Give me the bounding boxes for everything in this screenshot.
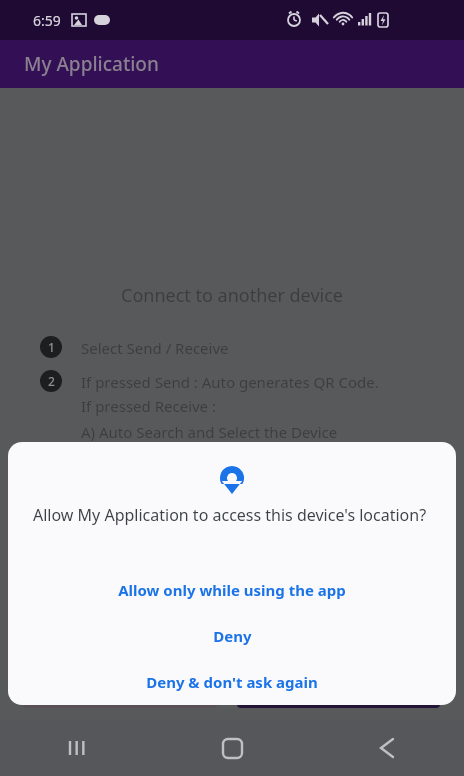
button[interactable]: Home	[155, 720, 309, 776]
staticText: Deny	[213, 626, 252, 646]
button[interactable]	[20, 662, 220, 708]
staticText: My Application	[24, 51, 159, 77]
button[interactable]: Recent apps	[0, 720, 155, 776]
button[interactable]: Deny	[8, 619, 456, 653]
staticText: Allow only while using the app	[118, 580, 346, 600]
button[interactable]	[237, 662, 440, 708]
staticText: Select Send / Receive	[81, 338, 229, 358]
staticText: Allow My Application to access this devi…	[33, 504, 433, 526]
button[interactable]: Deny & don't ask again	[8, 665, 456, 699]
staticText: 1	[48, 339, 55, 355]
staticText: Connect to another device	[0, 283, 464, 308]
staticText: A) Auto Search and Select the Device	[81, 422, 338, 442]
staticText: If pressed Send : Auto generates QR Code…	[81, 372, 379, 392]
button[interactable]: Allow only while using the app	[8, 573, 456, 607]
staticText: 2	[48, 373, 55, 389]
staticText: Deny & don't ask again	[146, 672, 318, 692]
button[interactable]: Back	[309, 720, 464, 776]
staticText: If pressed Receive :	[81, 396, 217, 416]
staticText: 6:59	[33, 11, 61, 30]
